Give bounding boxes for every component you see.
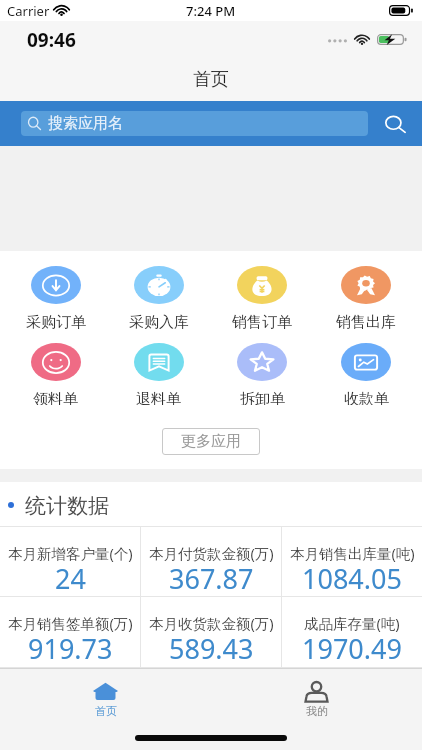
- button[interactable]: 本月销售出库量(吨): [282, 527, 422, 596]
- staticText: 搜索应用名: [48, 114, 123, 133]
- staticText: 成品库存量(吨): [304, 613, 400, 633]
- button[interactable]: 更多应用: [162, 428, 260, 455]
- staticText: 首页: [193, 68, 229, 91]
- button[interactable]: 领料单: [4, 328, 107, 405]
- button[interactable]: 本月新增客户量(个): [0, 527, 140, 596]
- staticText: 24: [55, 560, 86, 593]
- button[interactable]: 拆卸单: [210, 328, 314, 405]
- staticText: 采购入库: [129, 313, 189, 329]
- button[interactable]: 首页: [0, 669, 211, 718]
- button[interactable]: 销售出库: [314, 251, 418, 328]
- staticText: Carrier: [7, 2, 50, 20]
- staticText: 09:46: [27, 27, 76, 53]
- button[interactable]: 本月收货款金额(万): [141, 597, 281, 667]
- staticText: 589.43: [169, 630, 254, 664]
- button[interactable]: 我的: [211, 669, 422, 718]
- staticText: 更多应用: [181, 432, 241, 451]
- staticText: 1084.05: [302, 560, 402, 593]
- staticText: 拆卸单: [240, 390, 285, 406]
- button[interactable]: 收款单: [314, 328, 418, 405]
- staticText: 统计数据: [25, 493, 109, 519]
- staticText: 本月销售出库量(吨): [290, 543, 415, 563]
- staticText: 销售订单: [232, 313, 292, 329]
- staticText: 销售出库: [336, 313, 396, 329]
- staticText: 采购订单: [26, 313, 86, 329]
- button[interactable]: 采购入库: [107, 251, 210, 328]
- staticText: 我的: [306, 704, 328, 718]
- staticText: 本月收货款金额(万): [149, 613, 274, 633]
- button[interactable]: 本月付货款金额(万): [141, 527, 281, 596]
- staticText: 本月销售签单额(万): [8, 613, 133, 633]
- button[interactable]: 退料单: [107, 328, 210, 405]
- staticText: 919.73: [28, 630, 113, 664]
- button[interactable]: Search: [379, 107, 411, 141]
- staticText: 本月付货款金额(万): [149, 543, 274, 563]
- staticText: 367.87: [169, 560, 254, 593]
- staticText: 本月新增客户量(个): [8, 543, 133, 563]
- staticText: 1970.49: [302, 630, 402, 664]
- staticText: 领料单: [33, 390, 78, 406]
- staticText: 退料单: [136, 390, 181, 406]
- staticText: 7:24 PM: [186, 2, 236, 20]
- staticText: 收款单: [344, 390, 389, 406]
- button[interactable]: 搜索应用名: [21, 111, 368, 136]
- button[interactable]: 销售订单: [210, 251, 314, 328]
- staticText: 首页: [95, 704, 117, 718]
- button[interactable]: 本月销售签单额(万): [0, 597, 140, 667]
- button[interactable]: 采购订单: [4, 251, 107, 328]
- button[interactable]: 成品库存量(吨): [282, 597, 422, 667]
